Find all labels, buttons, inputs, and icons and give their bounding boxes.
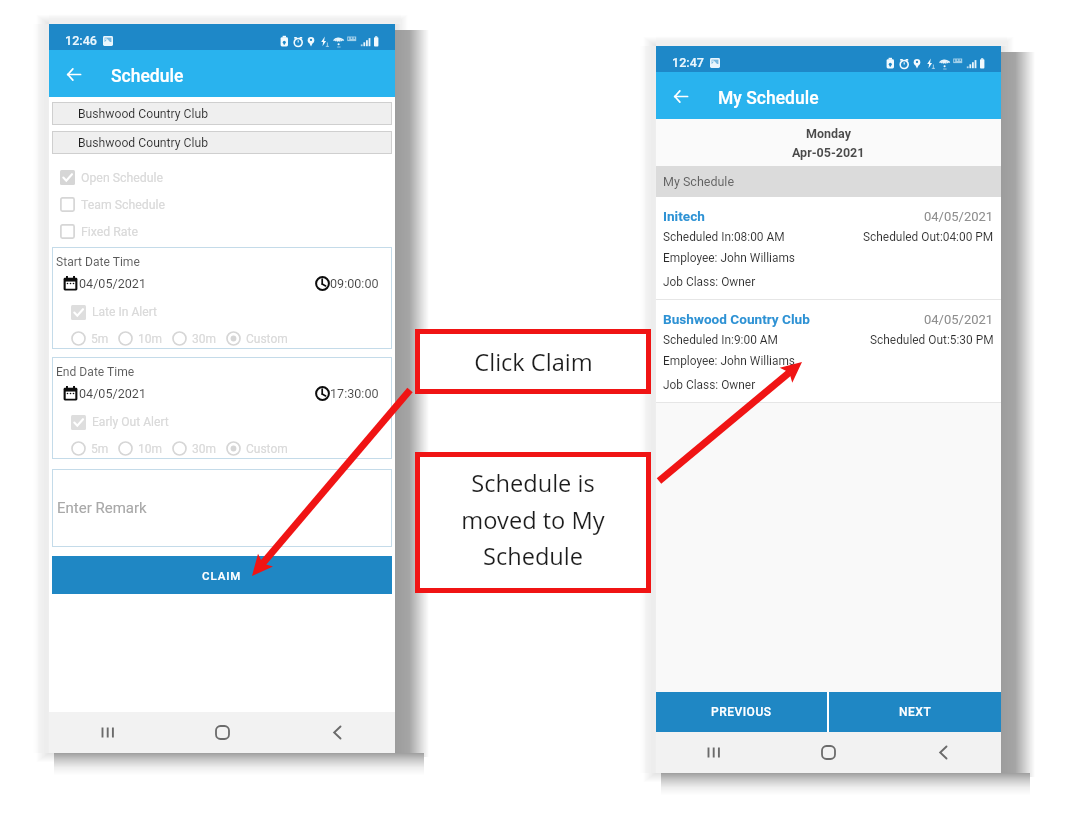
staticText: Start Date Time xyxy=(56,255,140,269)
button[interactable]: NEXT xyxy=(829,692,1001,732)
staticText: Bushwood Country Club xyxy=(78,136,209,150)
button[interactable]: Early Out Alert xyxy=(71,412,169,432)
button[interactable]: Open Schedule xyxy=(49,164,395,191)
button[interactable]: Bushwood Country Club xyxy=(656,300,1001,402)
button[interactable]: Team Schedule xyxy=(49,191,395,218)
staticText: Enter Remark xyxy=(57,499,147,517)
button[interactable]: Custom xyxy=(226,331,297,346)
staticText: My Schedule xyxy=(663,174,735,189)
button[interactable]: 10m xyxy=(118,331,172,346)
button[interactable]: Recent apps xyxy=(49,712,165,753)
staticText: 04/05/2021 xyxy=(79,386,147,401)
staticText: 04/05/2021 xyxy=(79,276,147,291)
staticText: Schedule xyxy=(111,66,184,87)
staticText: Scheduled In:9:00 AM xyxy=(663,333,778,347)
staticText: Bushwood Country Club xyxy=(78,107,209,121)
staticText: Custom xyxy=(246,332,288,346)
button[interactable]: 10m xyxy=(118,441,172,456)
staticText: End Date Time xyxy=(56,365,135,379)
button[interactable]: 30m xyxy=(172,441,226,456)
staticText: 12:46 xyxy=(65,33,97,48)
button[interactable]: Fixed Rate xyxy=(49,218,395,245)
staticText: 04/05/2021 xyxy=(924,312,994,327)
staticText: Late In Alert xyxy=(92,305,158,319)
button[interactable]: Back xyxy=(280,712,395,753)
button[interactable]: 30m xyxy=(172,331,226,346)
staticText: CLAIM xyxy=(202,569,242,582)
staticText: Apr-05-2021 xyxy=(792,145,865,160)
button[interactable]: 5m xyxy=(71,441,118,456)
staticText: 17:30:00 xyxy=(330,386,379,401)
staticText: 30m xyxy=(192,332,217,346)
button[interactable]: Navigate up xyxy=(662,73,700,119)
button[interactable]: Late In Alert xyxy=(71,302,158,322)
staticText: Initech xyxy=(663,208,705,224)
staticText: Job Class: Owner xyxy=(663,275,756,289)
staticText: 04/05/2021 xyxy=(924,209,994,224)
staticText: 5m xyxy=(91,442,109,456)
staticText: Custom xyxy=(246,442,288,456)
staticText: Scheduled Out:5:30 PM xyxy=(870,333,994,347)
staticText: NEXT xyxy=(899,705,932,719)
button[interactable]: Navigate up xyxy=(55,51,93,97)
button[interactable]: Back xyxy=(886,732,1001,773)
staticText: PREVIOUS xyxy=(711,705,772,719)
button[interactable]: Initech xyxy=(656,197,1001,299)
staticText: Open Schedule xyxy=(81,171,163,185)
button[interactable]: Home xyxy=(165,712,280,753)
staticText: 30m xyxy=(192,442,217,456)
staticText: Fixed Rate xyxy=(81,225,139,239)
staticText: My Schedule xyxy=(718,88,819,109)
staticText: Bushwood Country Club xyxy=(663,311,810,327)
staticText: Schedule is moved to My Schedule xyxy=(415,467,651,572)
button[interactable]: Bushwood Country Club xyxy=(52,131,392,154)
button[interactable]: Home xyxy=(771,732,886,773)
staticText: Scheduled Out:04:00 PM xyxy=(863,230,994,244)
staticText: 09:00:00 xyxy=(330,276,379,291)
button[interactable]: Custom xyxy=(226,441,297,456)
button[interactable]: 5m xyxy=(71,331,118,346)
staticText: 5m xyxy=(91,332,109,346)
button[interactable]: PREVIOUS xyxy=(656,692,827,732)
staticText: Job Class: Owner xyxy=(663,378,756,392)
staticText: 12:47 xyxy=(672,55,704,70)
button[interactable]: Recent apps xyxy=(656,732,771,773)
staticText: Team Schedule xyxy=(81,198,166,212)
staticText: Employee: John Williams xyxy=(663,354,795,368)
staticText: Scheduled In:08:00 AM xyxy=(663,230,785,244)
staticText: Monday xyxy=(806,126,851,141)
staticText: Employee: John Williams xyxy=(663,251,795,265)
button[interactable]: CLAIM xyxy=(52,556,392,594)
button[interactable]: Bushwood Country Club xyxy=(52,102,392,125)
staticText: Click Claim xyxy=(474,346,593,378)
staticText: 10m xyxy=(138,442,163,456)
staticText: Early Out Alert xyxy=(92,415,169,429)
staticText: 10m xyxy=(138,332,163,346)
button[interactable]: Enter Remark xyxy=(52,469,392,547)
